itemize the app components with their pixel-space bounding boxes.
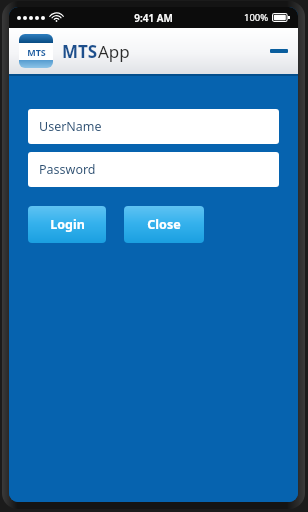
- staticText: Password: [39, 161, 96, 178]
- button[interactable]: Login: [28, 206, 106, 243]
- staticText: Login: [50, 216, 85, 233]
- button[interactable]: UserName: [28, 109, 279, 144]
- staticText: UserName: [39, 118, 102, 135]
- button[interactable]: Minimize: [266, 40, 292, 62]
- staticText: App: [98, 40, 130, 63]
- button[interactable]: Close: [124, 206, 204, 243]
- staticText: MTS: [62, 40, 98, 63]
- staticText: MTS: [27, 46, 46, 58]
- button[interactable]: MTS logo: [19, 34, 53, 68]
- button[interactable]: Password: [28, 152, 279, 187]
- staticText: 9:41 AM: [134, 11, 173, 25]
- staticText: 100%: [244, 11, 269, 24]
- staticText: Close: [147, 216, 181, 233]
